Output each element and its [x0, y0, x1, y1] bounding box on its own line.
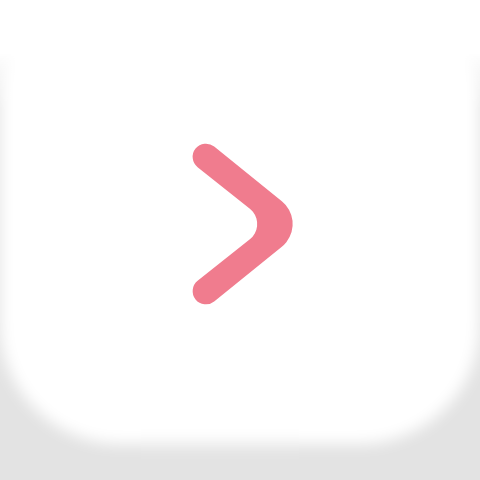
- button[interactable]: App icon: [0, 0, 480, 480]
